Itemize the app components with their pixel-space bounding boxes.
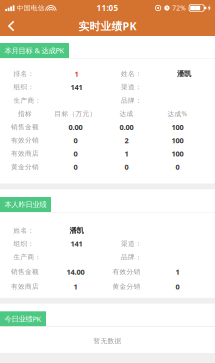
staticText: 暂无数据 [93, 337, 121, 345]
staticText: 达成% [167, 109, 187, 118]
staticText: 本月目标 & 达成PK [4, 45, 64, 55]
staticText: 0 [175, 162, 179, 172]
staticText: 排名： [13, 70, 34, 78]
staticText: 100 [171, 122, 183, 132]
staticText: 潘凯 [177, 69, 191, 78]
staticText: 生产商： [13, 253, 41, 261]
staticText: 14.00 [66, 267, 84, 277]
staticText: 1 [124, 149, 128, 159]
staticText: 品牌： [121, 96, 142, 105]
staticText: 本人昨日业绩 [4, 200, 46, 209]
staticText: 0 [73, 162, 77, 172]
staticText: 0.00 [68, 122, 82, 132]
staticText: 100 [171, 149, 183, 159]
staticText: 141 [70, 239, 82, 249]
staticText: 销售金额 [11, 268, 39, 276]
staticText: 0 [124, 162, 128, 172]
staticText: 1 [73, 282, 77, 292]
staticText: 组织： [13, 240, 34, 248]
staticText: 0 [73, 149, 77, 159]
staticText: 141 [70, 82, 82, 92]
staticText: 11:05 [96, 3, 118, 13]
staticText: 指标 [18, 110, 32, 118]
staticText: 1 [74, 69, 78, 79]
staticText: 实时业绩PK [78, 19, 136, 33]
staticText: 0.00 [119, 122, 133, 132]
staticText: 有效分销 [11, 136, 39, 145]
staticText: 姓名： [13, 226, 34, 235]
staticText: 今日业绩PK [4, 314, 41, 324]
staticText: 72% [172, 3, 186, 13]
staticText: 品牌： [121, 253, 142, 261]
staticText: 组织： [13, 83, 34, 91]
staticText: 100 [171, 135, 183, 145]
staticText: 有效分销 [112, 268, 140, 276]
staticText: 黄金分销 [112, 282, 140, 291]
staticText: 渠道： [121, 83, 142, 91]
staticText: 0 [73, 135, 77, 145]
staticText: 目标（万元） [54, 110, 96, 118]
staticText: 达成 [119, 110, 133, 118]
staticText: 黄金分销 [11, 163, 39, 171]
staticText: 0 [175, 282, 179, 292]
staticText: 销售金额 [11, 123, 39, 131]
button[interactable]: Back [0, 16, 22, 36]
staticText: 渠道： [121, 240, 142, 248]
staticText: 2 [124, 135, 128, 145]
staticText: 1 [175, 267, 179, 277]
staticText: 有效商店 [11, 149, 39, 158]
staticText: 中国电信 [17, 4, 45, 12]
staticText: 姓名： [121, 70, 142, 78]
staticText: 生产商： [13, 96, 41, 105]
staticText: 有效商店 [11, 282, 39, 291]
staticText: 潘凯 [69, 226, 83, 235]
